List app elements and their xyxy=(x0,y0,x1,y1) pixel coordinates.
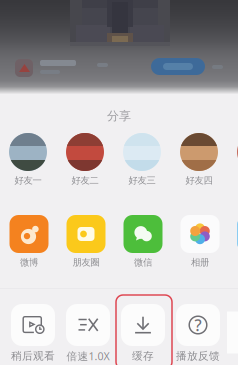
staticText: 好友一 xyxy=(14,175,41,186)
staticText: 倍速1.0X xyxy=(66,349,109,363)
staticText: 好友三 xyxy=(128,175,155,186)
staticText: 播放反馈 xyxy=(176,349,220,362)
button[interactable]: 好友五 xyxy=(230,133,238,185)
staticText: 好友四 xyxy=(185,175,212,186)
staticText: 好友二 xyxy=(71,175,98,186)
button[interactable]: 朋友圈 xyxy=(60,215,112,267)
button[interactable]: 好友四 xyxy=(173,133,225,185)
button[interactable]: 微信 xyxy=(117,215,169,267)
button[interactable]: 好友二 xyxy=(59,133,111,185)
button[interactable]: 微博 xyxy=(3,215,55,267)
button[interactable]: 稍后观看 xyxy=(7,304,59,361)
button[interactable]: 收藏 xyxy=(231,215,238,267)
staticText: 相册 xyxy=(191,257,209,268)
staticText: 朋友圈 xyxy=(72,257,99,268)
staticText: 稍后观看 xyxy=(11,349,55,362)
staticText: 微信 xyxy=(134,257,152,268)
button[interactable]: 好友一 xyxy=(2,133,54,185)
staticText: 缓存 xyxy=(132,349,154,362)
staticText: 分享 xyxy=(107,109,131,123)
button[interactable]: 缓存 xyxy=(117,304,169,361)
button[interactable]: ? xyxy=(172,304,224,361)
staticText: ? xyxy=(194,314,201,336)
staticText: 微博 xyxy=(20,257,38,268)
button[interactable]: 倍速1.0X xyxy=(62,304,114,361)
button[interactable]: 相册 xyxy=(174,215,226,267)
button[interactable]: 好友三 xyxy=(116,133,168,185)
